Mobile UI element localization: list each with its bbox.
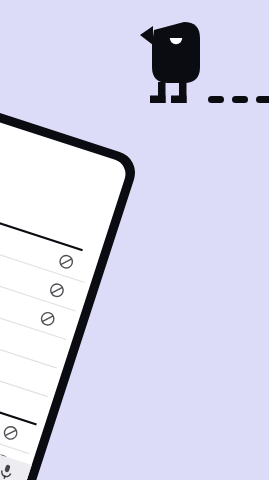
button[interactable]: Onboarding illustration [0, 0, 269, 480]
